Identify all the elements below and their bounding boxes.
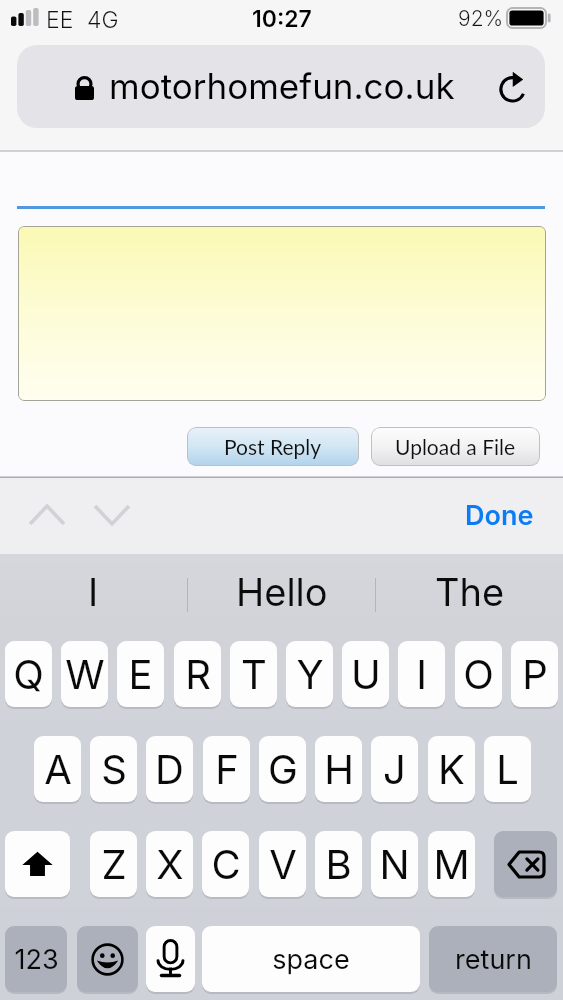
- staticText: Hello: [236, 569, 328, 615]
- staticText: EE: [46, 6, 74, 34]
- button[interactable]: The: [376, 554, 563, 636]
- button[interactable]: Q: [5, 641, 52, 707]
- staticText: D: [155, 745, 184, 793]
- button[interactable]: D: [146, 736, 193, 802]
- staticText: F: [215, 745, 239, 793]
- staticText: V: [269, 840, 297, 888]
- staticText: motorhomefun.co.uk: [109, 65, 455, 107]
- staticText: Q: [13, 650, 44, 698]
- button[interactable]: C: [202, 831, 249, 897]
- button[interactable]: A: [34, 736, 81, 802]
- button[interactable]: motorhomefun.co.uk: [17, 45, 545, 128]
- staticText: G: [268, 745, 298, 793]
- staticText: Z: [101, 840, 127, 888]
- button[interactable]: U: [342, 641, 389, 707]
- button[interactable]: J: [371, 736, 418, 802]
- button[interactable]: X: [146, 831, 193, 897]
- staticText: R: [185, 650, 211, 698]
- staticText: space: [272, 943, 350, 976]
- button[interactable]: Done: [465, 485, 534, 545]
- staticText: C: [211, 840, 241, 888]
- staticText: Post Reply: [224, 434, 322, 459]
- button[interactable]: E: [117, 641, 164, 707]
- button[interactable]: K: [428, 736, 475, 802]
- button[interactable]: Post Reply: [187, 427, 359, 466]
- staticText: 123: [14, 943, 59, 976]
- button[interactable]: I: [398, 641, 445, 707]
- staticText: 4G: [87, 6, 119, 34]
- button[interactable]: G: [259, 736, 306, 802]
- staticText: U: [351, 650, 381, 698]
- staticText: N: [379, 840, 410, 888]
- staticText: I: [88, 569, 99, 615]
- button[interactable]: 123: [5, 926, 67, 992]
- button[interactable]: V: [259, 831, 306, 897]
- staticText: P: [522, 650, 548, 698]
- button[interactable]: space: [202, 926, 420, 992]
- button[interactable]: Shift: [5, 831, 70, 897]
- button[interactable]: R: [174, 641, 221, 707]
- button[interactable]: F: [203, 736, 250, 802]
- button[interactable]: T: [230, 641, 277, 707]
- staticText: J: [383, 745, 406, 793]
- button[interactable]: P: [511, 641, 558, 707]
- button[interactable]: N: [371, 831, 418, 897]
- staticText: O: [463, 650, 494, 698]
- button[interactable]: M: [428, 831, 475, 897]
- button[interactable]: L: [484, 736, 531, 802]
- button[interactable]: W: [61, 641, 108, 707]
- staticText: Upload a File: [395, 434, 516, 459]
- button[interactable]: Upload a File: [371, 427, 540, 466]
- staticText: S: [101, 745, 127, 793]
- button[interactable]: S: [90, 736, 137, 802]
- button[interactable]: [18, 226, 546, 401]
- button[interactable]: Backspace: [494, 831, 557, 897]
- staticText: H: [324, 745, 354, 793]
- button[interactable]: Previous field: [20, 486, 74, 544]
- staticText: 10:27: [252, 5, 312, 33]
- button[interactable]: H: [315, 736, 362, 802]
- button[interactable]: Y: [286, 641, 333, 707]
- button[interactable]: Next field: [85, 486, 139, 544]
- staticText: Done: [465, 499, 534, 532]
- staticText: K: [438, 745, 465, 793]
- staticText: A: [44, 745, 72, 793]
- staticText: return: [455, 943, 532, 976]
- staticText: The: [435, 569, 505, 615]
- staticText: T: [241, 650, 267, 698]
- staticText: B: [325, 840, 352, 888]
- staticText: X: [156, 840, 184, 888]
- staticText: E: [128, 650, 153, 698]
- button[interactable]: Dictate: [146, 926, 195, 992]
- button[interactable]: B: [315, 831, 362, 897]
- button[interactable]: Z: [90, 831, 137, 897]
- staticText: I: [416, 650, 427, 698]
- staticText: L: [496, 745, 519, 793]
- button[interactable]: O: [455, 641, 502, 707]
- button[interactable]: Reload: [479, 45, 545, 128]
- staticText: 92%: [458, 6, 504, 31]
- button[interactable]: I: [0, 554, 187, 636]
- button[interactable]: return: [429, 926, 557, 992]
- staticText: W: [65, 650, 105, 698]
- staticText: Y: [296, 650, 324, 698]
- button[interactable]: Hello: [188, 554, 375, 636]
- button[interactable]: Emoji: [77, 926, 138, 992]
- staticText: M: [433, 840, 470, 888]
